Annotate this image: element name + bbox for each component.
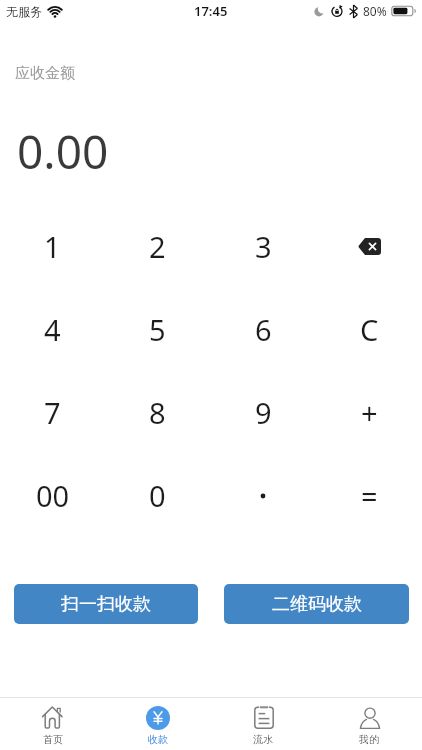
staticText: 首页	[43, 733, 63, 746]
staticText: 0.00	[17, 120, 109, 183]
button[interactable]: 我的	[316, 698, 422, 750]
staticText: 3	[255, 227, 272, 266]
staticText: 二维码收款	[272, 593, 362, 616]
staticText: C	[360, 310, 379, 349]
staticText: 00	[36, 476, 70, 515]
button[interactable]: 9	[210, 371, 316, 454]
button[interactable]: 00	[0, 454, 105, 537]
button[interactable]: 4	[0, 288, 105, 371]
button[interactable]: 1	[0, 205, 105, 288]
staticText: 17:45	[194, 2, 228, 20]
staticText: 5	[149, 310, 166, 349]
staticText: 流水	[253, 733, 273, 746]
staticText: 9	[255, 393, 272, 432]
button[interactable]: +	[316, 371, 422, 454]
staticText: 6	[255, 310, 272, 349]
staticText: 应收金额	[15, 64, 75, 83]
button[interactable]: 5	[105, 288, 210, 371]
button[interactable]: C	[316, 288, 422, 371]
button[interactable]: =	[316, 454, 422, 537]
button[interactable]: 2	[105, 205, 210, 288]
button[interactable]: 6	[210, 288, 316, 371]
button[interactable]	[210, 454, 316, 537]
staticText: 4	[44, 310, 61, 349]
staticText: 0	[149, 476, 166, 515]
staticText: 我的	[359, 733, 379, 746]
button[interactable]: 流水	[210, 698, 316, 750]
button[interactable]: 8	[105, 371, 210, 454]
staticText: 8	[149, 393, 166, 432]
staticText: 1	[44, 227, 61, 266]
button[interactable]: 二维码收款	[224, 584, 409, 624]
button[interactable]: 7	[0, 371, 105, 454]
staticText: =	[361, 476, 378, 515]
button[interactable]	[316, 205, 422, 288]
staticText: 80%	[363, 3, 387, 19]
staticText: 2	[149, 227, 166, 266]
button[interactable]: 收款	[105, 698, 210, 750]
button[interactable]: 0	[105, 454, 210, 537]
staticText: 无服务	[6, 4, 42, 19]
staticText: 收款	[148, 733, 168, 746]
button[interactable]: 3	[210, 205, 316, 288]
staticText: 7	[44, 393, 61, 432]
button[interactable]: 首页	[0, 698, 105, 750]
staticText: 扫一扫收款	[61, 593, 151, 616]
staticText: +	[361, 393, 378, 432]
button[interactable]: 扫一扫收款	[14, 584, 198, 624]
